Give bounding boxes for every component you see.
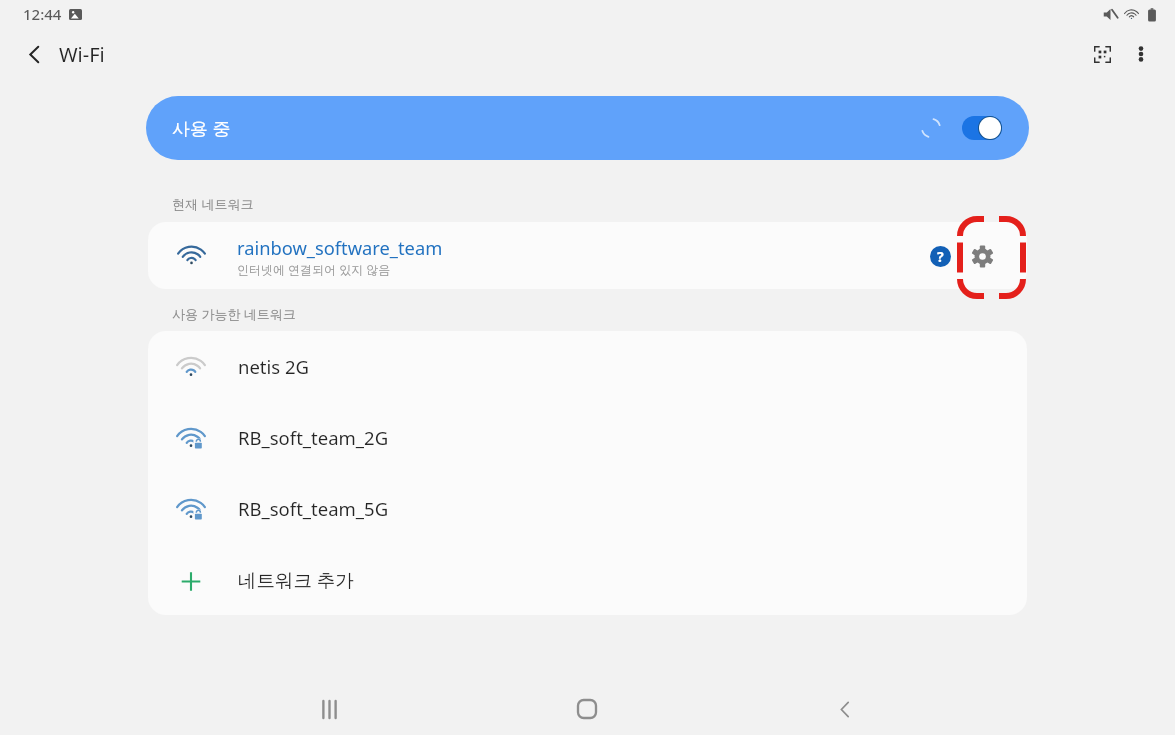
staticText: RB_soft_team_2G [238,425,389,450]
button[interactable]: More options [1119,32,1163,76]
button[interactable]: Home [563,685,611,733]
button[interactable]: Recents [305,685,353,733]
staticText: RB_soft_team_5G [238,496,389,521]
button[interactable]: RB_soft_team_2G [148,402,1027,473]
button[interactable]: Help [922,238,958,274]
staticText: netis 2G [238,354,310,379]
staticText: 사용 가능한 네트워크 [172,305,296,323]
staticText: ? [937,247,944,266]
staticText: 12:44 [23,4,62,24]
button[interactable]: Back [821,685,869,733]
button[interactable]: RB_soft_team_5G [148,473,1027,544]
button[interactable]: netis 2G [148,331,1027,402]
button[interactable]: Scan QR code [1080,32,1124,76]
button[interactable]: Wi-Fi switch on [956,111,1008,145]
staticText: 네트워크 추가 [238,567,354,592]
button[interactable]: Navigate up [14,34,54,74]
button[interactable]: 네트워크 추가 [148,544,1027,615]
button[interactable]: Network settings [960,234,1004,278]
staticText: Wi-Fi [59,41,105,68]
button[interactable]: rainbow_software_team [148,222,1027,289]
button[interactable]: 사용 중 [146,96,1029,160]
staticText: 인터넷에 연결되어 있지 않음 [237,261,391,277]
staticText: 사용 중 [172,116,231,141]
staticText: rainbow_software_team [237,235,443,260]
staticText: 현재 네트워크 [172,195,254,213]
